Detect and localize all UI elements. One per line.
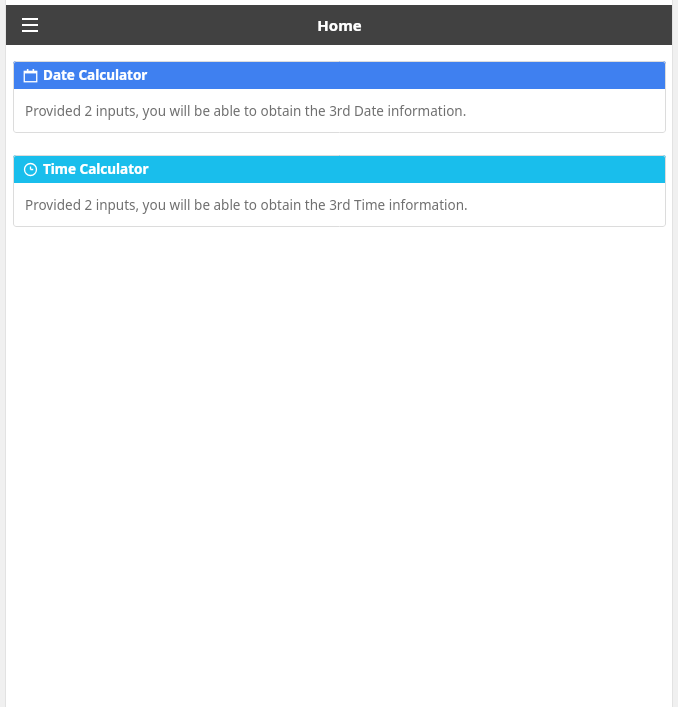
staticText: Provided 2 inputs, you will be able to o… [25, 102, 467, 120]
button[interactable]: Date Calculator [13, 61, 666, 133]
staticText: Time Calculator [43, 160, 149, 178]
staticText: Date Calculator [43, 66, 148, 84]
staticText: Provided 2 inputs, you will be able to o… [25, 196, 468, 214]
button[interactable]: Open navigation menu [12, 7, 48, 43]
button[interactable]: Time Calculator [13, 155, 666, 227]
staticText: Home [317, 15, 362, 35]
